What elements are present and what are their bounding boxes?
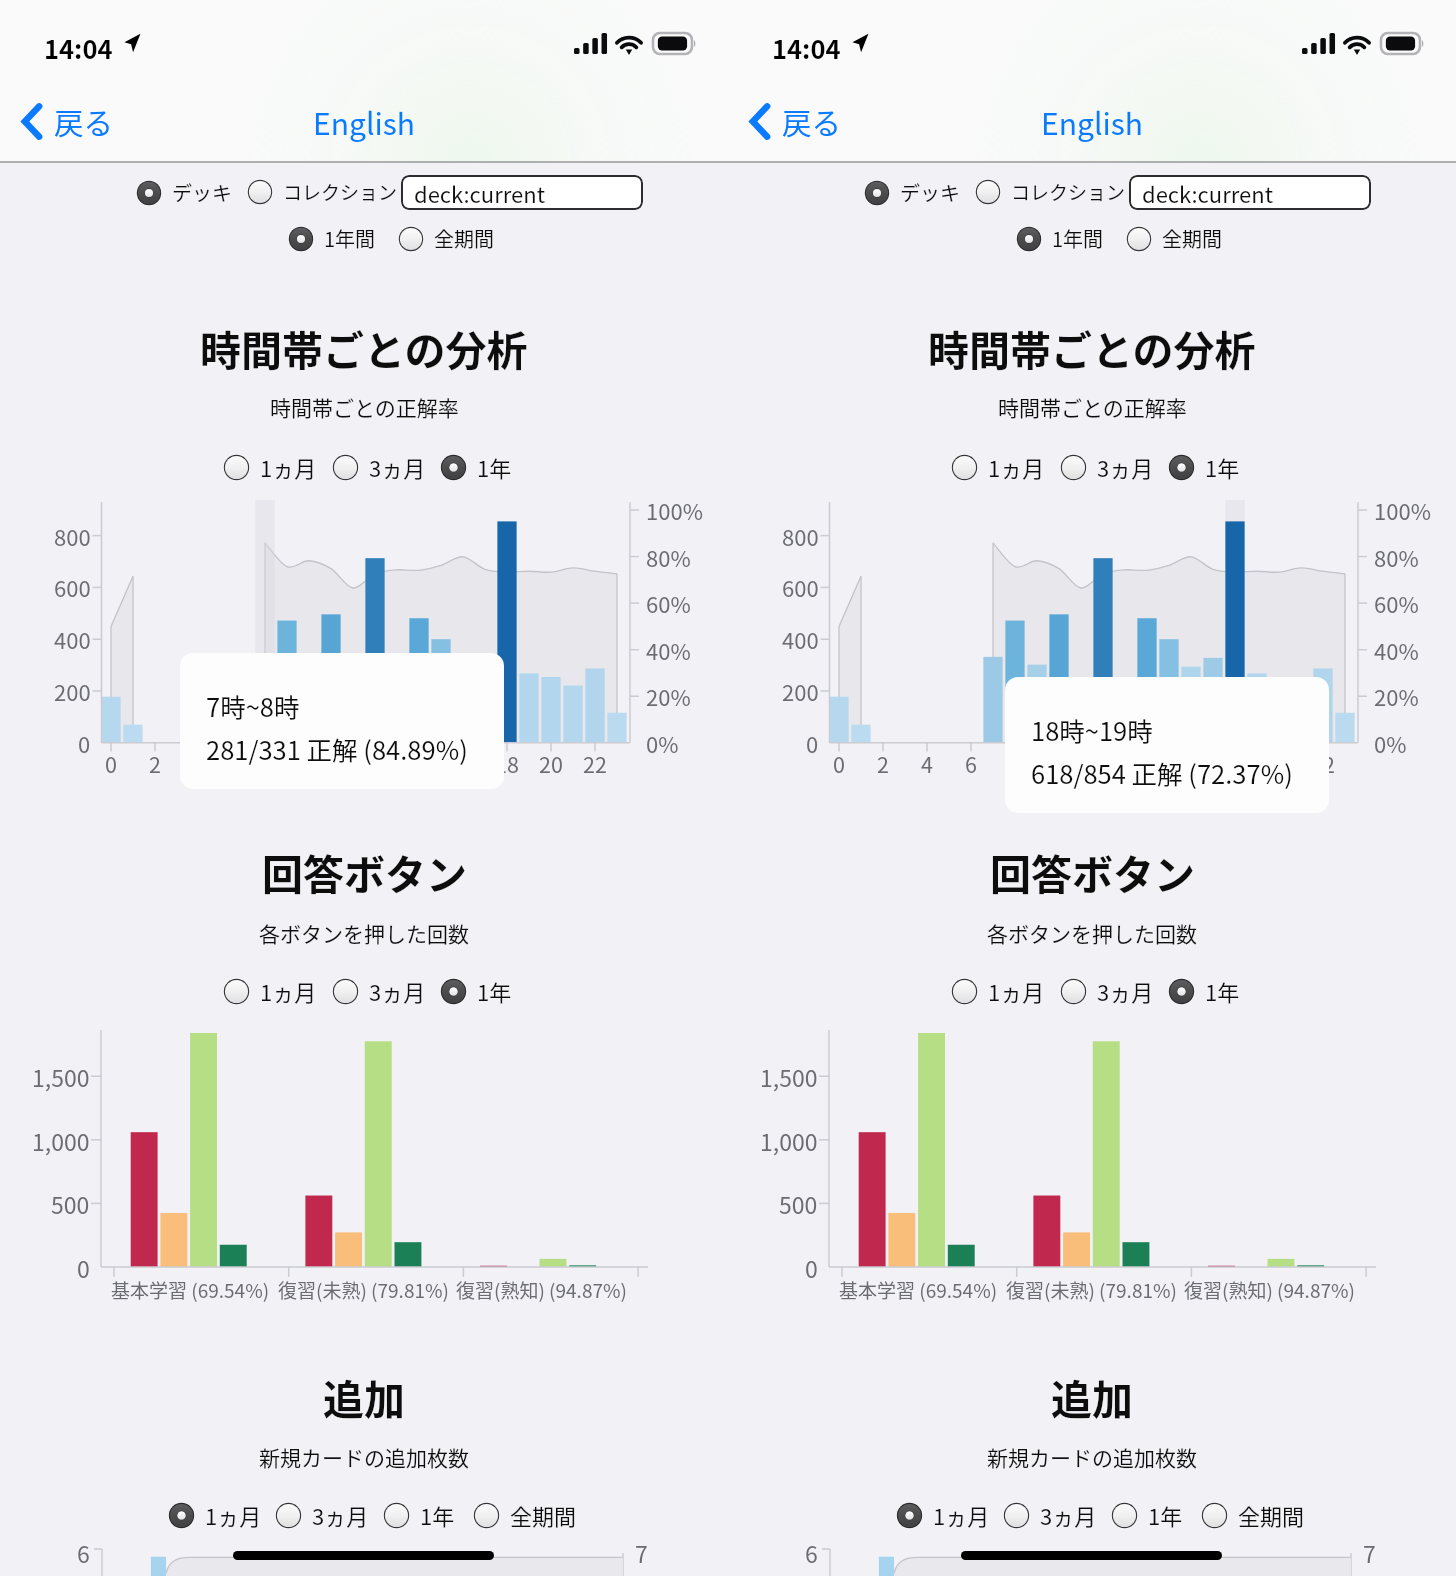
- staticText: 1年: [477, 451, 512, 483]
- staticText: 1ヵ月: [260, 451, 317, 483]
- staticText: 1ヵ月: [988, 451, 1045, 483]
- other: Wi-Fi: [1343, 32, 1371, 54]
- staticText: 追加: [1051, 1367, 1133, 1426]
- staticText: 10: [319, 748, 343, 779]
- staticText: 1年: [1148, 1499, 1183, 1531]
- staticText: 時間帯ごとの分析: [200, 318, 528, 377]
- button[interactable]: 全期間: [398, 224, 494, 253]
- staticText: 回答ボタン: [990, 842, 1195, 901]
- staticText: 400: [54, 623, 91, 655]
- staticText: 18時~19時: [1031, 711, 1153, 748]
- staticText: 6: [237, 748, 249, 779]
- staticText: 281/331 正解 (84.89%): [206, 730, 468, 767]
- staticText: 1年間: [324, 224, 376, 253]
- staticText: 0: [805, 1251, 818, 1284]
- staticText: 20%: [1374, 680, 1419, 712]
- button[interactable]: 3ヵ月: [1060, 975, 1154, 1007]
- button[interactable]: 1ヵ月: [896, 1499, 990, 1531]
- button[interactable]: 1ヵ月: [951, 975, 1045, 1007]
- button[interactable]: 1ヵ月: [168, 1499, 262, 1531]
- button[interactable]: 1年: [440, 451, 512, 483]
- staticText: 各ボタンを押した回数: [259, 918, 469, 948]
- staticText: 40%: [1374, 634, 1419, 666]
- staticText: 3ヵ月: [369, 451, 426, 483]
- button[interactable]: deck:current: [401, 175, 643, 210]
- staticText: 7: [635, 1536, 648, 1569]
- staticText: 16: [1179, 748, 1203, 779]
- staticText: 4: [921, 748, 933, 779]
- staticText: 6: [965, 748, 977, 779]
- staticText: 1年: [1205, 975, 1240, 1007]
- button[interactable]: 1ヵ月: [223, 975, 317, 1007]
- button[interactable]: 3ヵ月: [332, 451, 426, 483]
- staticText: 1ヵ月: [260, 975, 317, 1007]
- staticText: 復習(熟知) (94.87%): [456, 1276, 627, 1304]
- button[interactable]: deck:current: [1129, 175, 1371, 210]
- button[interactable]: 3ヵ月: [332, 975, 426, 1007]
- staticText: 全期間: [434, 224, 494, 253]
- staticText: 500: [779, 1187, 818, 1220]
- staticText: 600: [782, 571, 819, 603]
- button[interactable]: 戻る: [10, 91, 127, 151]
- staticText: 2: [877, 748, 889, 779]
- staticText: 0: [806, 727, 819, 759]
- button[interactable]: 1年間: [1016, 224, 1104, 253]
- other: Location: [851, 33, 869, 53]
- staticText: 3ヵ月: [1040, 1499, 1097, 1531]
- button[interactable]: English: [1023, 92, 1161, 151]
- staticText: 復習(未熟) (79.81%): [1006, 1276, 1177, 1304]
- button[interactable]: 1ヵ月: [223, 451, 317, 483]
- staticText: 100%: [1374, 494, 1431, 526]
- button[interactable]: 全期間: [1126, 224, 1222, 253]
- button[interactable]: English: [295, 92, 433, 151]
- staticText: 1ヵ月: [933, 1499, 990, 1531]
- staticText: 800: [782, 520, 819, 552]
- staticText: 戻る: [54, 100, 114, 143]
- staticText: 1年: [477, 975, 512, 1007]
- staticText: 14: [1135, 748, 1159, 779]
- staticText: 7時~8時: [206, 687, 300, 724]
- button[interactable]: 3ヵ月: [1003, 1499, 1097, 1531]
- button[interactable]: コレクション: [975, 178, 1126, 206]
- staticText: 1ヵ月: [205, 1499, 262, 1531]
- staticText: 2: [149, 748, 161, 779]
- staticText: 20%: [646, 680, 691, 712]
- button[interactable]: 1年: [1111, 1499, 1183, 1531]
- staticText: deck:current: [414, 177, 545, 209]
- staticText: 80%: [646, 541, 691, 573]
- button[interactable]: コレクション: [247, 178, 398, 206]
- button[interactable]: 1年間: [288, 224, 376, 253]
- staticText: 時間帯ごとの分析: [928, 318, 1256, 377]
- staticText: 18: [495, 748, 519, 779]
- staticText: 1,000: [760, 1124, 818, 1157]
- staticText: 80%: [1374, 541, 1419, 573]
- staticText: 60%: [1374, 587, 1419, 619]
- button[interactable]: 3ヵ月: [275, 1499, 369, 1531]
- button[interactable]: 1ヵ月: [951, 451, 1045, 483]
- staticText: 時間帯ごとの正解率: [270, 392, 459, 422]
- button[interactable]: 1年: [1168, 451, 1240, 483]
- staticText: 14: [407, 748, 431, 779]
- button[interactable]: デッキ: [864, 178, 960, 207]
- button[interactable]: 戻る: [738, 91, 855, 151]
- other: Cellular signal: [574, 33, 607, 54]
- staticText: 0: [833, 748, 845, 779]
- staticText: 200: [54, 675, 91, 707]
- staticText: デッキ: [172, 178, 232, 207]
- staticText: 200: [782, 675, 819, 707]
- staticText: 追加: [323, 1367, 405, 1426]
- button[interactable]: デッキ: [136, 178, 232, 207]
- staticText: 1年: [1205, 451, 1240, 483]
- button[interactable]: 1年: [440, 975, 512, 1007]
- staticText: 10: [1047, 748, 1071, 779]
- button[interactable]: 1年: [383, 1499, 455, 1531]
- staticText: 回答ボタン: [262, 842, 467, 901]
- staticText: 1ヵ月: [988, 975, 1045, 1007]
- staticText: English: [1041, 100, 1143, 143]
- staticText: 18: [1223, 748, 1247, 779]
- button[interactable]: 1年: [1168, 975, 1240, 1007]
- staticText: 0%: [646, 727, 679, 759]
- button[interactable]: 全期間: [473, 1499, 577, 1531]
- button[interactable]: 3ヵ月: [1060, 451, 1154, 483]
- button[interactable]: 全期間: [1201, 1499, 1305, 1531]
